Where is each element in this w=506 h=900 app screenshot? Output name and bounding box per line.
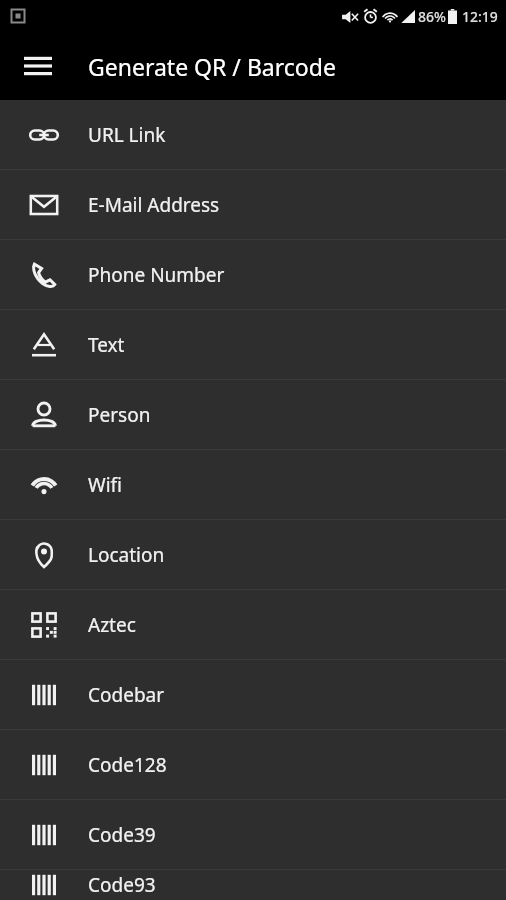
staticText: Code39	[88, 822, 156, 848]
button[interactable]: Phone Number	[0, 240, 506, 309]
button[interactable]: Location	[0, 520, 506, 589]
button[interactable]: Text	[0, 310, 506, 379]
staticText: Person	[88, 402, 151, 428]
staticText: Code93	[88, 872, 156, 898]
staticText: Codebar	[88, 682, 165, 708]
staticText: 12:19	[462, 7, 498, 26]
staticText: Aztec	[88, 612, 136, 638]
button[interactable]: Aztec	[0, 590, 506, 659]
staticText: URL Link	[88, 122, 166, 148]
button[interactable]: E-Mail Address	[0, 170, 506, 239]
staticText: E-Mail Address	[88, 192, 220, 218]
staticText: Text	[88, 332, 125, 358]
button[interactable]: Codebar	[0, 660, 506, 729]
staticText: 86%	[418, 7, 446, 26]
button[interactable]: Wifi	[0, 450, 506, 519]
staticText: Generate QR / Barcode	[88, 51, 336, 82]
button[interactable]: Code93	[0, 870, 506, 900]
staticText: Phone Number	[88, 262, 225, 288]
button[interactable]: URL Link	[0, 100, 506, 169]
staticText: Wifi	[88, 472, 123, 498]
staticText: Code128	[88, 752, 167, 778]
staticText: Location	[88, 542, 165, 568]
button[interactable]: Code39	[0, 800, 506, 869]
button[interactable]: Open navigation menu	[10, 38, 66, 94]
button[interactable]: Person	[0, 380, 506, 449]
button[interactable]: Code128	[0, 730, 506, 799]
